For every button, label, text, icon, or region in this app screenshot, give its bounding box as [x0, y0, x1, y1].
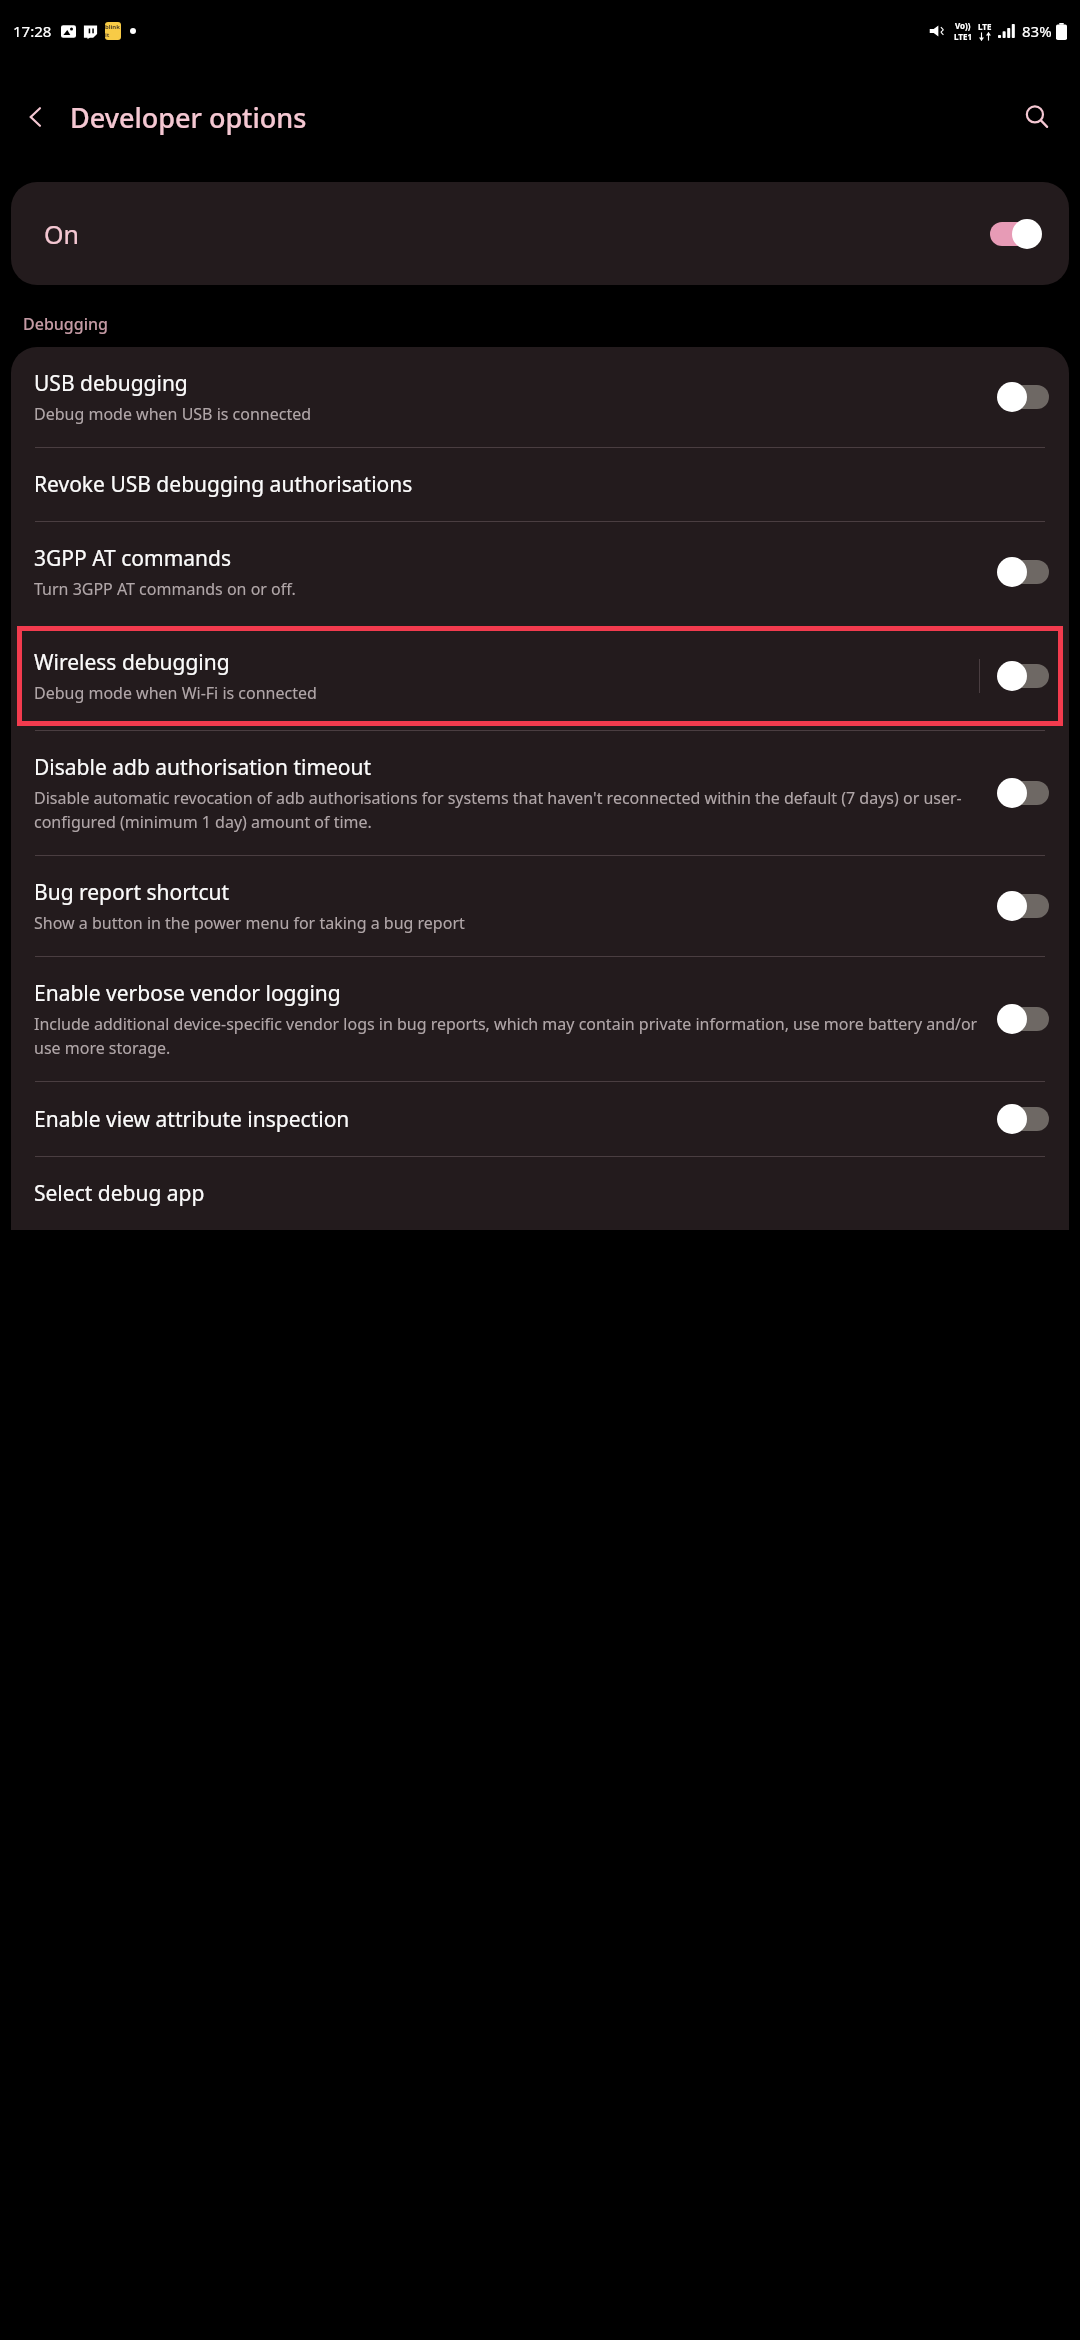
button[interactable]: On: [11, 182, 1069, 285]
staticText: Revoke USB debugging authorisations: [34, 470, 413, 499]
button[interactable]: Toggle off: [997, 382, 1049, 412]
button[interactable]: Toggle off: [997, 557, 1049, 587]
button[interactable]: Toggle off: [997, 891, 1049, 921]
staticText: Turn 3GPP AT commands on or off.: [34, 578, 296, 600]
staticText: blinkit: [105, 23, 121, 39]
staticText: Select debug app: [34, 1179, 205, 1208]
staticText: Wireless debugging: [34, 648, 230, 677]
staticText: Disable adb authorisation timeout: [34, 753, 372, 782]
staticText: 17:28: [13, 21, 52, 41]
staticText: Enable verbose vendor logging: [34, 979, 341, 1008]
button[interactable]: Select debug app: [11, 1157, 1069, 1230]
button[interactable]: Revoke USB debugging authorisations: [11, 448, 1069, 521]
staticText: Show a button in the power menu for taki…: [34, 912, 465, 934]
button[interactable]: Back: [10, 91, 62, 143]
staticText: Include additional device-specific vendo…: [34, 1013, 983, 1059]
button[interactable]: Disable adb authorisation timeout: [11, 731, 1069, 855]
staticText: 3GPP AT commands: [34, 544, 232, 573]
button[interactable]: Toggle off: [997, 661, 1049, 691]
button[interactable]: Toggle off: [997, 1104, 1049, 1134]
button[interactable]: Bug report shortcut: [11, 856, 1069, 956]
button[interactable]: USB debugging: [11, 347, 1069, 447]
staticText: Vo)): [955, 20, 971, 31]
staticText: Bug report shortcut: [34, 878, 230, 907]
staticText: Disable automatic revocation of adb auth…: [34, 787, 983, 833]
button[interactable]: Wireless debugging: [17, 626, 1063, 726]
button[interactable]: Toggle off: [997, 778, 1049, 808]
staticText: On: [44, 217, 79, 251]
button[interactable]: Enable verbose vendor logging: [11, 957, 1069, 1081]
button[interactable]: Toggle off: [997, 1004, 1049, 1034]
staticText: Enable view attribute inspection: [34, 1105, 350, 1134]
staticText: 83%: [1022, 21, 1052, 41]
button[interactable]: 3GPP AT commands: [11, 522, 1069, 622]
staticText: LTE1: [954, 31, 972, 42]
staticText: LTE: [978, 21, 992, 32]
staticText: Debug mode when USB is connected: [34, 403, 312, 425]
button[interactable]: Search: [1010, 90, 1064, 144]
button[interactable]: Toggle on: [990, 219, 1042, 249]
staticText: Debugging: [23, 313, 108, 335]
button[interactable]: Enable view attribute inspection: [11, 1082, 1069, 1156]
staticText: Debug mode when Wi-Fi is connected: [34, 682, 317, 704]
staticText: Developer options: [70, 99, 307, 136]
staticText: USB debugging: [34, 369, 188, 398]
